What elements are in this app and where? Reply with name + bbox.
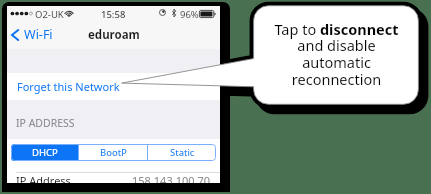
staticText: BootP: [100, 146, 127, 159]
staticText: Wi-Fi: [24, 26, 53, 43]
button[interactable]: DHCP: [11, 144, 78, 161]
other: Battery 96 percent: [199, 10, 216, 18]
staticText: 158.143.100.70: [132, 173, 211, 183]
button[interactable]: Forget this Network: [7, 73, 220, 100]
button[interactable]: Tap to disconnect and disable automatic …: [254, 6, 419, 105]
other: Location services: [159, 9, 166, 16]
staticText: 96%: [180, 8, 199, 21]
staticText: DHCP: [32, 146, 58, 159]
button[interactable]: Static: [148, 144, 216, 161]
other: Bluetooth: [172, 9, 176, 17]
staticText: 15:58: [101, 8, 126, 21]
other: Wi-Fi signal: [65, 10, 73, 17]
button[interactable]: Wi-Fi: [7, 20, 67, 49]
staticText: O2-UK: [35, 8, 64, 21]
staticText: eduroam: [88, 27, 140, 43]
button[interactable]: BootP: [79, 144, 147, 161]
staticText: IP ADDRESS: [16, 116, 75, 130]
staticText: Tap to disconnect and disable automatic …: [274, 19, 399, 89]
staticText: IP Address: [16, 173, 71, 183]
staticText: Forget this Network: [17, 79, 120, 94]
staticText: Static: [170, 146, 195, 159]
